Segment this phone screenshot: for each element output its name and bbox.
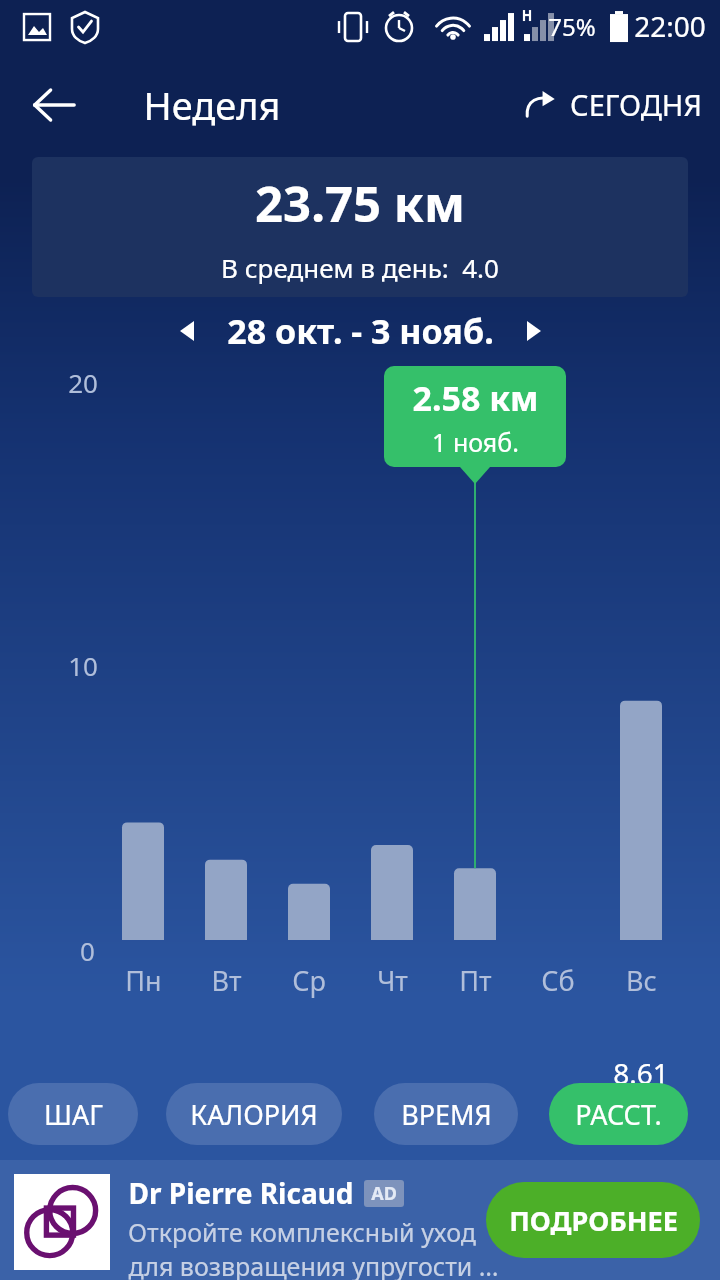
staticText: 10: [68, 648, 98, 683]
staticText: КАЛОРИЯ: [190, 1096, 318, 1133]
button[interactable]: ШАГ: [8, 1083, 138, 1145]
button[interactable]: ПОДРОБНЕЕ: [486, 1182, 700, 1258]
staticText: для возвращения упругости …: [128, 1249, 499, 1280]
staticText: Неделя: [143, 79, 281, 131]
staticText: 28 окт. - 3 нояб.: [227, 308, 494, 354]
button[interactable]: РАССТ.: [549, 1083, 688, 1145]
button[interactable]: Previous week: [165, 308, 211, 354]
button[interactable]: Back: [20, 71, 88, 139]
staticText: Откройте комплексный уход: [128, 1215, 476, 1249]
staticText: Пн: [125, 962, 162, 999]
staticText: 0: [80, 933, 95, 968]
staticText: 2.58 км: [412, 375, 539, 421]
button[interactable]: СЕГОДНЯ: [516, 75, 710, 134]
button[interactable]: 2.58 км: [384, 366, 566, 467]
staticText: 2.89: [198, 1213, 254, 1251]
staticText: 1 нояб.: [432, 425, 519, 459]
button[interactable]: КАЛОРИЯ: [166, 1083, 342, 1145]
staticText: СЕГОДНЯ: [570, 85, 702, 124]
staticText: 2.02: [281, 1237, 337, 1275]
staticText: Пт: [459, 962, 492, 999]
staticText: ВРЕМЯ: [401, 1096, 492, 1133]
staticText: 75%: [548, 10, 596, 43]
staticText: 8.61: [613, 1054, 669, 1092]
staticText: 23.75 км: [255, 170, 465, 237]
button[interactable]: Dr Pierre Ricaud: [0, 1160, 720, 1280]
staticText: 3.42: [364, 1198, 420, 1236]
staticText: 22:00: [634, 7, 706, 45]
button[interactable]: ВРЕМЯ: [374, 1083, 518, 1145]
staticText: РАССТ.: [575, 1096, 662, 1133]
staticText: 4.23: [115, 1175, 171, 1213]
staticText: Вт: [211, 962, 242, 999]
staticText: Чт: [377, 962, 408, 999]
button[interactable]: Next week: [510, 308, 556, 354]
staticText: Вс: [626, 962, 657, 999]
staticText: Ср: [292, 962, 326, 999]
staticText: Dr Pierre Ricaud: [128, 1174, 354, 1212]
staticText: 20: [68, 365, 98, 400]
button[interactable]: 23.75 км: [32, 157, 688, 297]
staticText: В среднем в день: 4.0: [221, 250, 499, 285]
staticText: ПОДРОБНЕЕ: [509, 1202, 678, 1239]
staticText: Сб: [541, 962, 575, 999]
staticText: ШАГ: [44, 1096, 103, 1133]
staticText: AD: [371, 1181, 397, 1206]
